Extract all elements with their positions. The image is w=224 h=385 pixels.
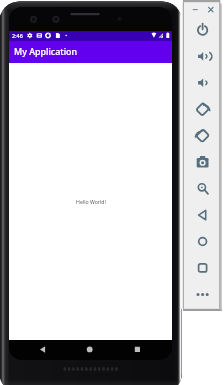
button[interactable]: Close xyxy=(205,4,217,15)
button[interactable]: Home xyxy=(191,232,215,252)
button[interactable]: Power xyxy=(191,20,215,40)
button[interactable]: Rotate right xyxy=(191,126,215,146)
staticText: 2:46 xyxy=(12,32,23,39)
button[interactable]: Rotate left xyxy=(191,99,215,119)
button[interactable]: Home xyxy=(80,340,100,360)
button[interactable]: Overview xyxy=(191,258,215,278)
button[interactable]: Recent apps xyxy=(127,340,147,360)
staticText: Hello World! xyxy=(76,198,106,205)
button[interactable]: Back xyxy=(191,205,215,225)
button[interactable]: More options xyxy=(191,285,215,305)
button[interactable]: Volume down xyxy=(191,73,215,93)
button[interactable]: Back xyxy=(33,340,53,360)
button[interactable]: Take screenshot xyxy=(191,152,215,172)
staticText: My Application xyxy=(14,45,78,57)
button[interactable]: Minimize xyxy=(190,4,202,15)
button[interactable]: Volume up xyxy=(191,46,215,66)
button[interactable]: Zoom xyxy=(191,179,215,199)
